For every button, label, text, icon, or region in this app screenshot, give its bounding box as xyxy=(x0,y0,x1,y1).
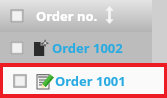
staticText: Order 1002 xyxy=(52,39,123,57)
button[interactable]: Select row xyxy=(3,67,164,94)
staticText: Order no. xyxy=(36,7,98,25)
button[interactable]: Select row xyxy=(0,32,167,63)
staticText: Order 1001 xyxy=(55,72,126,90)
button[interactable]: Sort by order number xyxy=(105,6,114,24)
button[interactable]: Select row xyxy=(10,9,24,23)
button[interactable]: Select row xyxy=(0,0,167,32)
button[interactable]: Select row xyxy=(10,41,24,55)
button[interactable]: Select row xyxy=(13,74,27,88)
